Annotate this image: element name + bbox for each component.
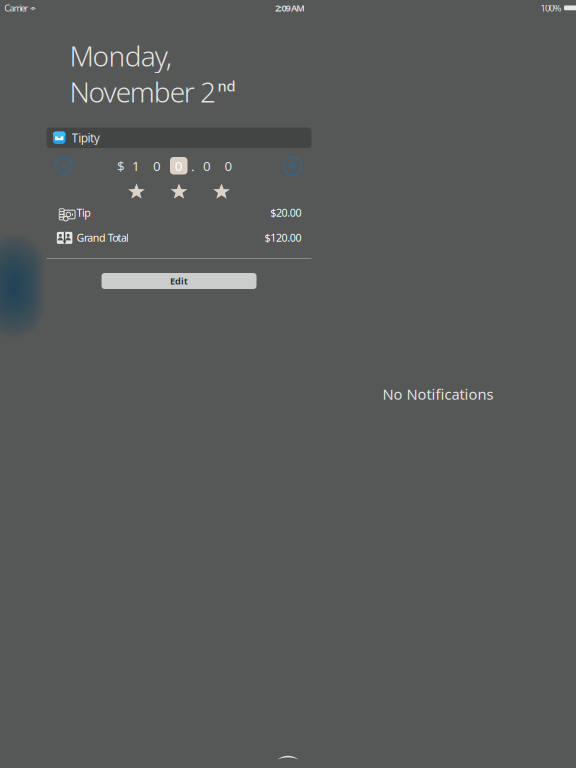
staticText: Tipity xyxy=(71,130,100,146)
button[interactable]: 0 xyxy=(170,157,187,174)
button[interactable]: Rate one star xyxy=(128,184,145,198)
staticText: $20.00 xyxy=(270,205,301,220)
staticText: November 2 xyxy=(69,73,216,110)
button[interactable]: Decrease amount xyxy=(55,158,72,174)
button[interactable]: Rate two stars xyxy=(170,184,188,198)
button[interactable]: 0 xyxy=(148,157,166,174)
staticText: $120.00 xyxy=(265,230,301,245)
staticText: Edit xyxy=(170,275,188,287)
button[interactable]: 0 xyxy=(220,157,237,174)
staticText: 0 xyxy=(153,157,161,175)
staticText: Carrier xyxy=(4,2,29,14)
button[interactable]: 0 xyxy=(198,157,216,174)
staticText: 0 xyxy=(224,157,232,175)
staticText: nd xyxy=(217,76,235,95)
staticText: $ xyxy=(117,157,125,175)
staticText: Tip xyxy=(76,205,91,220)
button[interactable]: Increase amount xyxy=(284,157,302,175)
button[interactable]: Tipity xyxy=(46,127,311,148)
staticText: Grand Total xyxy=(76,230,129,245)
button[interactable]: Edit xyxy=(101,273,256,289)
staticText: 0 xyxy=(203,157,211,175)
staticText: 0 xyxy=(175,157,183,175)
staticText: 100% xyxy=(541,2,562,14)
staticText: 1 xyxy=(132,157,140,175)
staticText: No Notifications xyxy=(382,384,493,404)
staticText: Monday, xyxy=(69,37,172,74)
button[interactable]: Rate three stars xyxy=(213,184,230,198)
button[interactable]: 1 xyxy=(127,157,145,174)
staticText: . xyxy=(191,157,195,175)
staticText: 2:09 AM xyxy=(275,2,305,14)
